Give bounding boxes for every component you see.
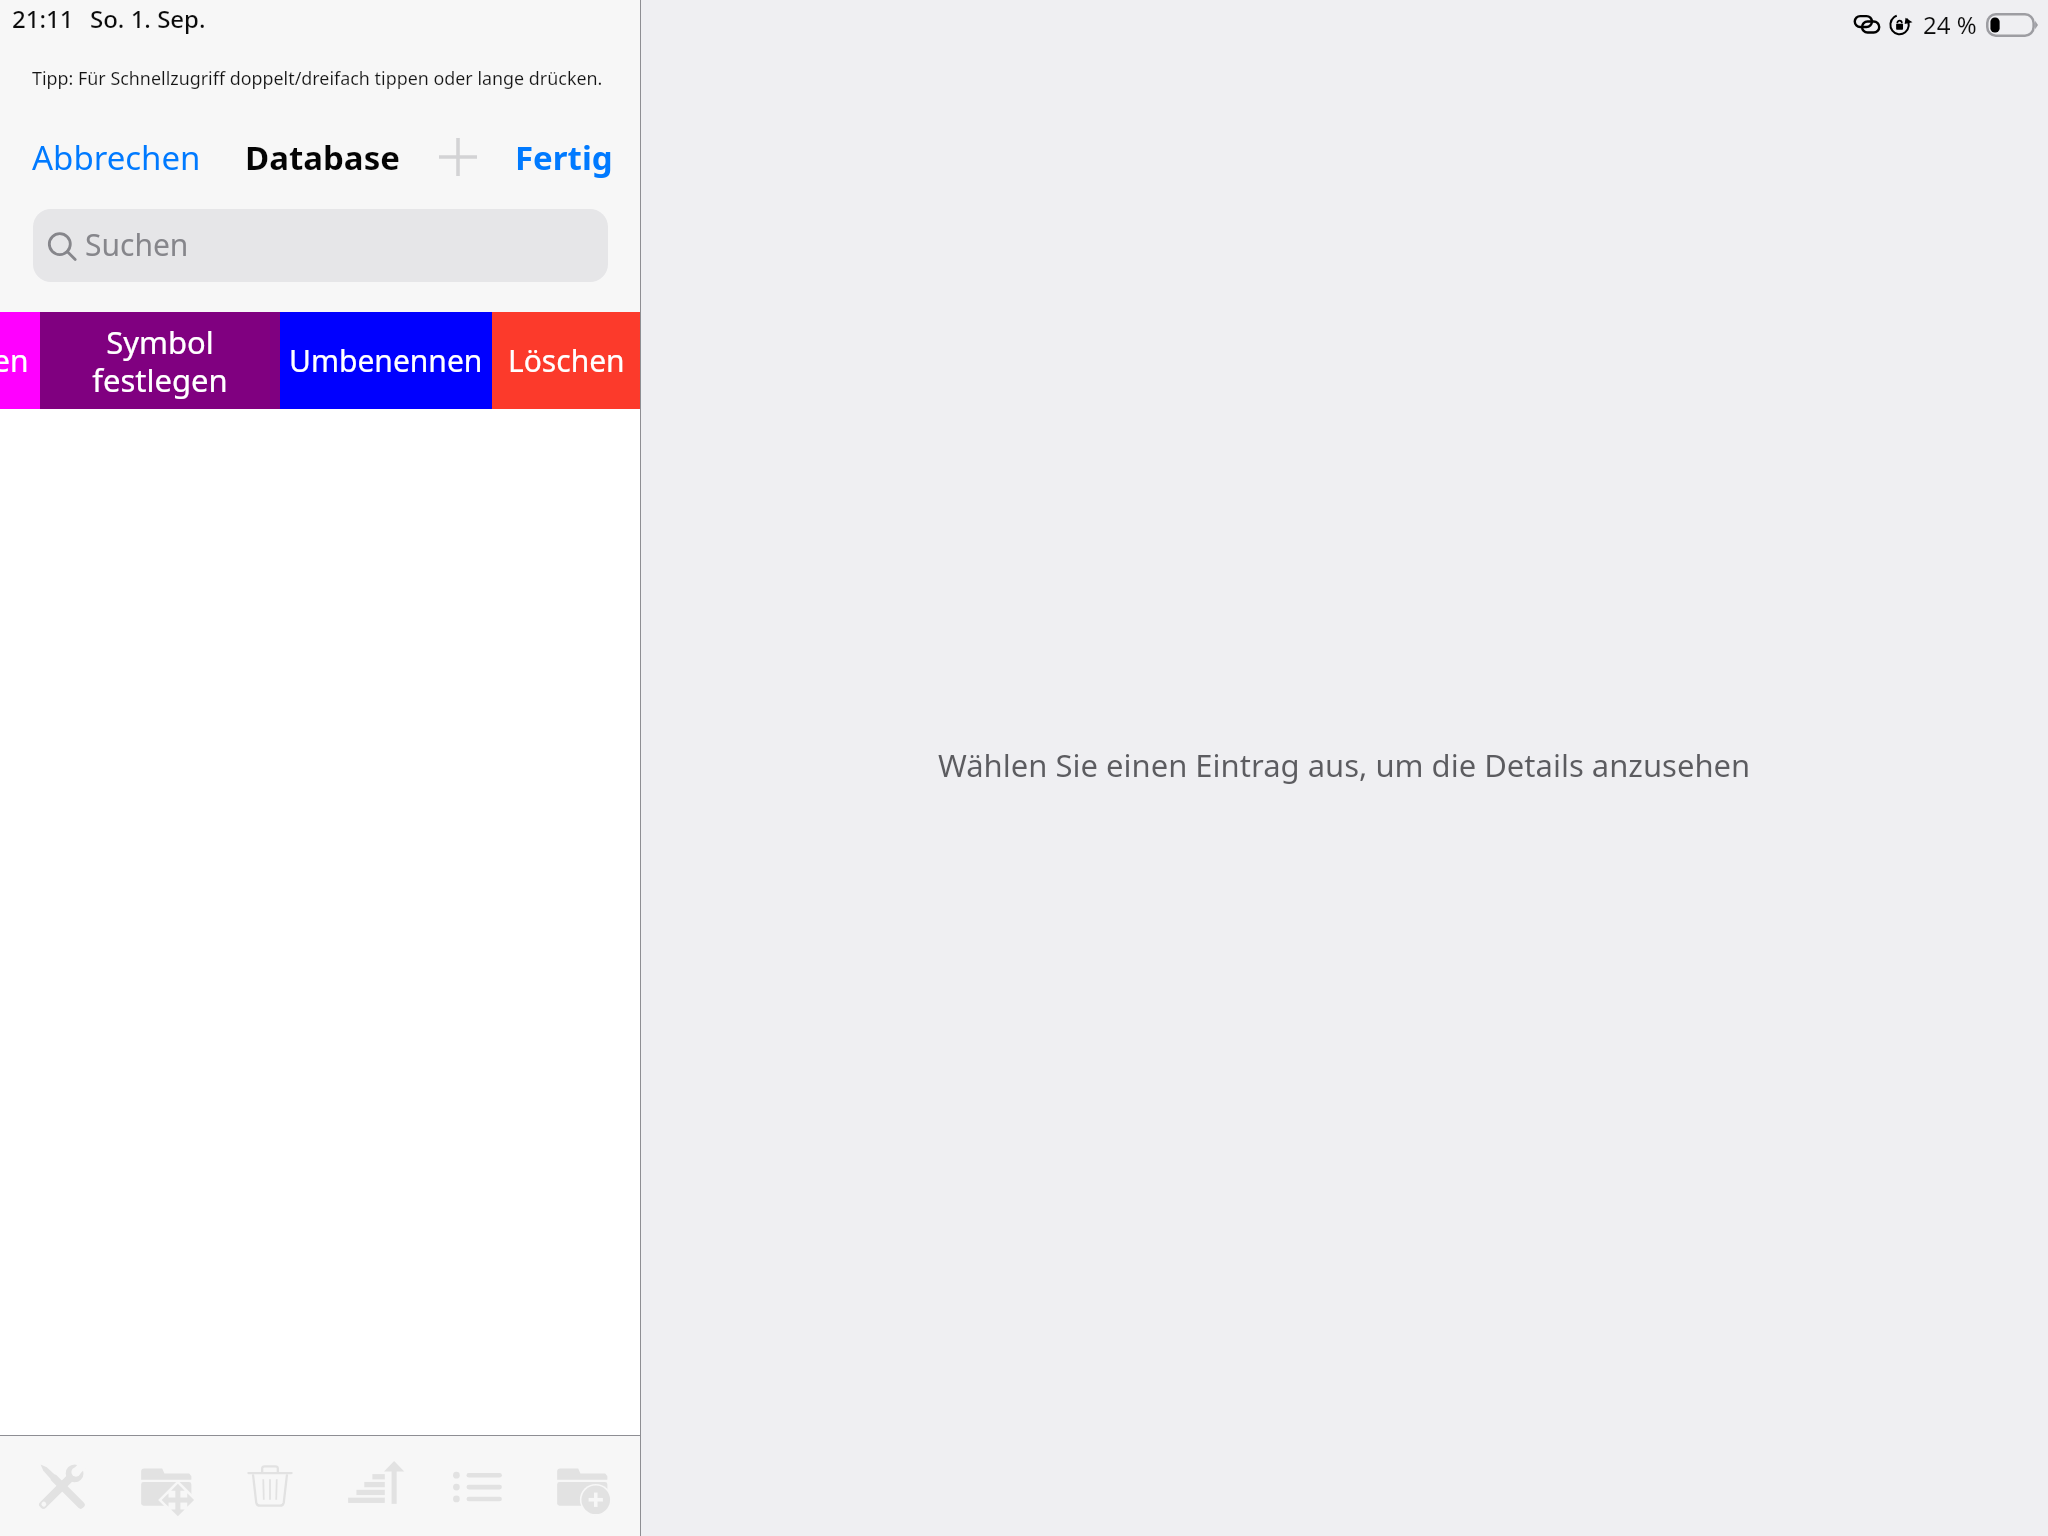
staticText: Fertig: [515, 135, 613, 180]
staticText: Löschen: [508, 340, 625, 381]
button[interactable]: Neuer Ordner: [530, 1436, 634, 1536]
staticText: Suchen: [85, 224, 189, 265]
button[interactable]: Löschen: [218, 1436, 322, 1536]
button[interactable]: Werkzeuge: [10, 1436, 114, 1536]
button[interactable]: Suchen: [33, 209, 608, 282]
staticText: 21:11: [12, 2, 74, 35]
staticText: en: [0, 340, 29, 381]
staticText: Umbenennen: [289, 340, 483, 381]
staticText: Tipp: Für Schnellzugriff doppelt/dreifac…: [32, 66, 603, 90]
staticText: 24 %: [1923, 8, 1977, 41]
button[interactable]: Abbrechen: [20, 133, 213, 181]
staticText: Database: [245, 135, 400, 180]
button[interactable]: Sortieren: [322, 1436, 426, 1536]
button[interactable]: Umbenennen: [280, 312, 492, 409]
staticText: Abbrechen: [32, 135, 201, 180]
button[interactable]: Hinzufügen: [432, 133, 484, 181]
button[interactable]: Verschieben: [114, 1436, 218, 1536]
button[interactable]: Liste: [426, 1436, 530, 1536]
staticText: Symbol festlegen: [92, 321, 228, 401]
button[interactable]: Symbol festlegen: [40, 312, 280, 409]
staticText: So. 1. Sep.: [90, 2, 206, 35]
button[interactable]: Fertig: [503, 133, 625, 181]
button[interactable]: Löschen: [492, 312, 640, 409]
button[interactable]: en: [0, 312, 40, 409]
staticText: Wählen Sie einen Eintrag aus, um die Det…: [938, 744, 1751, 786]
